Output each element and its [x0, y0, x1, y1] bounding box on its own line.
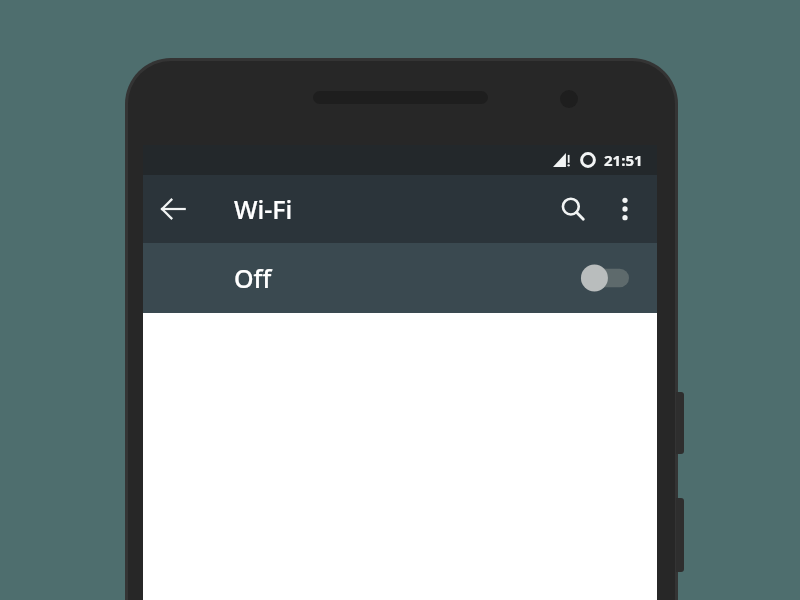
staticText: Off: [234, 261, 272, 295]
button[interactable]: Off: [143, 243, 657, 313]
staticText: 21:51: [604, 150, 643, 170]
staticText: Wi-Fi: [234, 192, 293, 226]
button[interactable]: Back: [147, 183, 199, 235]
button[interactable]: Search: [547, 183, 599, 235]
button[interactable]: More options: [599, 183, 651, 235]
other: Wi-Fi toggle, Off: [577, 258, 641, 298]
